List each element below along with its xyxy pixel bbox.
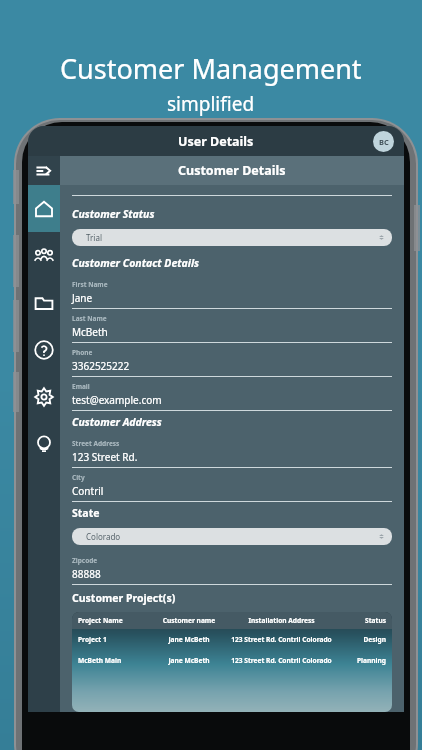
button[interactable]: Ideas xyxy=(28,420,60,467)
staticText: 3362525222 xyxy=(72,359,130,373)
staticText: Planning xyxy=(337,656,386,665)
staticText: City xyxy=(72,473,85,482)
button[interactable]: Trial xyxy=(72,229,392,246)
button[interactable]: Customers xyxy=(28,232,60,279)
button[interactable]: McBeth Main xyxy=(72,650,392,671)
staticText: Jane xyxy=(72,291,93,305)
staticText: BC xyxy=(379,137,389,147)
staticText: First Name xyxy=(72,280,108,289)
staticText: Installation Address xyxy=(226,616,337,625)
staticText: Customer Contact Details xyxy=(72,256,200,270)
button[interactable]: Projects xyxy=(28,279,60,326)
staticText: Trial xyxy=(86,232,102,243)
staticText: Customer Status xyxy=(72,207,155,221)
staticText: Customer Address xyxy=(72,415,162,429)
button[interactable]: Project 1 xyxy=(72,629,392,650)
staticText: McBeth xyxy=(72,325,108,339)
button[interactable]: Help xyxy=(28,326,60,373)
button[interactable]: Settings xyxy=(28,373,60,420)
staticText: User Details xyxy=(178,133,254,150)
staticText: Colorado xyxy=(86,531,121,542)
staticText: Jane McBeth xyxy=(152,635,226,644)
staticText: State xyxy=(72,506,100,520)
staticText: test@example.com xyxy=(72,393,162,407)
staticText: 123 Street Rd. Contril Colorado xyxy=(226,635,337,644)
staticText: Zipcode xyxy=(72,556,98,565)
staticText: simplified xyxy=(167,91,255,117)
button[interactable]: Open menu xyxy=(28,156,60,185)
staticText: Project 1 xyxy=(78,635,152,644)
staticText: Contril xyxy=(72,484,104,498)
staticText: Customer Details xyxy=(178,162,286,179)
button[interactable]: Home xyxy=(28,185,60,232)
staticText: Customer Management xyxy=(60,50,362,87)
staticText: Street Address xyxy=(72,439,120,448)
staticText: Design xyxy=(337,635,386,644)
staticText: Project Name xyxy=(78,616,152,625)
staticText: 123 Street Rd. Contril Colorado xyxy=(226,656,337,665)
staticText: Status xyxy=(337,616,386,625)
button[interactable]: Account xyxy=(373,131,394,152)
staticText: Email xyxy=(72,382,90,391)
staticText: Jane McBeth xyxy=(152,656,226,665)
staticText: Phone xyxy=(72,348,93,357)
staticText: 88888 xyxy=(72,567,101,581)
button[interactable]: Colorado xyxy=(72,528,392,545)
staticText: Customer name xyxy=(152,616,226,625)
staticText: Customer Project(s) xyxy=(72,591,176,605)
staticText: McBeth Main xyxy=(78,656,152,665)
staticText: 123 Street Rd. xyxy=(72,450,138,464)
staticText: Last Name xyxy=(72,314,107,323)
